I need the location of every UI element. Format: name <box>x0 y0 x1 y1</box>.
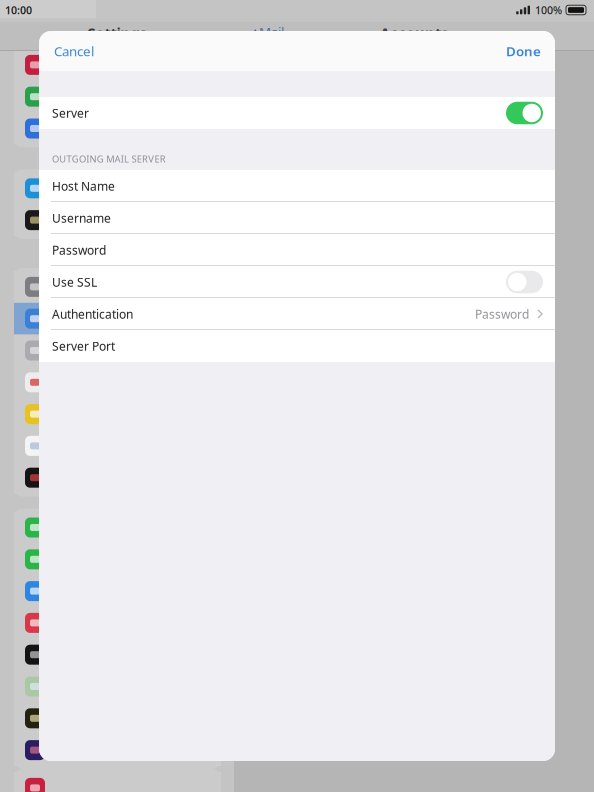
staticText: Mail <box>259 23 284 41</box>
staticText: Done <box>506 42 541 60</box>
button[interactable]: Username <box>39 202 555 234</box>
staticText: 10:00 <box>5 3 32 17</box>
button[interactable]: Server Port <box>39 330 555 362</box>
staticText: Password <box>475 306 529 322</box>
button[interactable]: Server <box>39 97 555 129</box>
staticText: Use SSL <box>52 274 97 290</box>
button[interactable]: Use SSL <box>39 266 555 298</box>
staticText: Authentication <box>52 306 133 322</box>
staticText: Server Port <box>52 338 115 354</box>
staticText: Accounts <box>380 23 448 42</box>
staticText: Server <box>52 105 89 121</box>
staticText: 100% <box>535 3 562 17</box>
button[interactable]: Password <box>39 234 555 266</box>
staticText: OUTGOING MAIL SERVER <box>52 153 165 165</box>
button[interactable]: Host Name <box>39 170 555 202</box>
button[interactable]: Cancel <box>39 31 104 71</box>
button[interactable]: Done <box>496 31 555 71</box>
staticText: Settings <box>87 23 146 42</box>
staticText: Password <box>52 242 106 258</box>
staticText: Cancel <box>54 42 94 60</box>
staticText: Host Name <box>52 178 115 194</box>
staticText: Username <box>52 210 111 226</box>
button[interactable]: Authentication <box>39 298 555 330</box>
